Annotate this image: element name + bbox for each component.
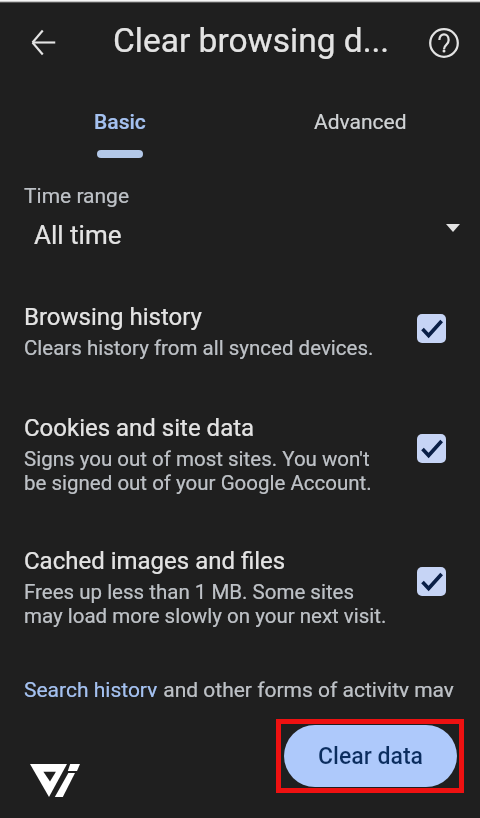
button[interactable]: Help [424,23,464,63]
button[interactable]: Clear data [284,725,457,787]
staticText: Frees up less than 1 MB. Some sites [24,580,355,604]
button[interactable]: Browsing history [0,303,480,365]
button[interactable]: Basic [0,96,240,158]
button[interactable]: Time range [0,184,480,250]
staticText: Clears history from all synced devices. [24,336,374,360]
button[interactable]: Advanced [240,96,480,150]
staticText: Advanced [314,110,407,135]
staticText: All time [34,220,122,250]
staticText: Signs you out of most sites. You won't [24,447,370,471]
staticText: be signed out of your Google Account. [24,471,372,495]
staticText: Search history [24,678,158,697]
staticText: Clear browsing d... [113,21,390,60]
staticText: Basic [94,110,146,135]
staticText: Cookies and site data [24,414,255,442]
button[interactable]: Search history [24,678,454,697]
staticText: Cached images and files [24,547,286,575]
staticText: Browsing history [24,303,202,331]
button[interactable]: Back [23,22,63,62]
staticText: Time range [24,184,130,209]
staticText: and other forms of activity may [158,678,454,697]
button[interactable]: Cached images and files [0,547,480,633]
staticText: Clear data [318,743,424,770]
button[interactable]: Cookies and site data [0,414,480,500]
staticText: may load more slowly on your next visit. [24,604,387,628]
